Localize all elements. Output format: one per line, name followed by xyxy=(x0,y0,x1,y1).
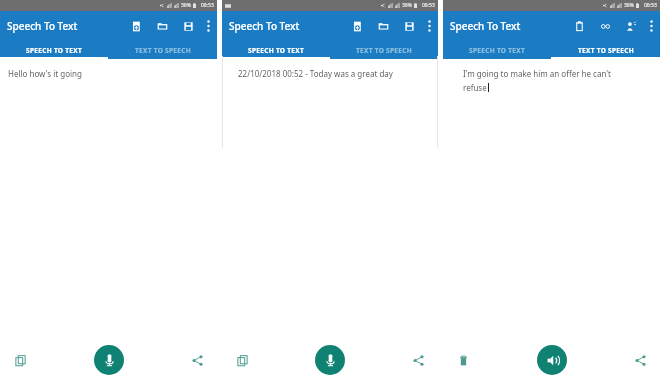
button[interactable]: SPEECH TO TEXT xyxy=(443,41,551,59)
button[interactable]: New file xyxy=(123,13,149,39)
button[interactable]: Hello how's it going xyxy=(8,68,211,79)
staticText: Speech To Text xyxy=(450,19,521,33)
button[interactable]: More options xyxy=(422,13,436,39)
staticText: TEXT TO SPEECH xyxy=(578,46,634,55)
button[interactable]: Share xyxy=(187,350,207,370)
button[interactable]: Voice settings xyxy=(618,13,644,39)
button[interactable]: Start recording xyxy=(94,345,124,375)
button[interactable]: Speak text xyxy=(537,345,567,375)
staticText: Hello how's it going xyxy=(8,68,82,79)
staticText: 22/10/2018 00:52 - Today was a great day xyxy=(238,68,393,79)
button[interactable]: Copy xyxy=(232,350,252,370)
staticText: refuse xyxy=(463,82,487,93)
button[interactable]: TEXT TO SPEECH xyxy=(551,41,660,59)
button[interactable]: SPEECH TO TEXT xyxy=(0,41,108,59)
button[interactable]: Copy xyxy=(10,350,30,370)
staticText: TEXT TO SPEECH xyxy=(135,46,191,55)
button[interactable]: Open folder xyxy=(370,13,396,39)
staticText: 00:53 xyxy=(201,2,214,9)
staticText: SPEECH TO TEXT xyxy=(248,46,304,55)
button[interactable]: More options xyxy=(201,13,215,39)
button[interactable]: TEXT TO SPEECH xyxy=(108,41,217,59)
button[interactable]: Language xyxy=(592,13,618,39)
button[interactable]: I'm going to make him an offer he can't xyxy=(463,68,654,93)
staticText: SPEECH TO TEXT xyxy=(26,46,82,55)
button[interactable]: More options xyxy=(644,13,658,39)
button[interactable]: Save xyxy=(396,13,422,39)
button[interactable]: Paste from clipboard xyxy=(566,13,592,39)
button[interactable]: New file xyxy=(344,13,370,39)
staticText: 00:53 xyxy=(422,2,435,9)
button[interactable]: Share xyxy=(408,350,428,370)
staticText: TEXT TO SPEECH xyxy=(356,46,412,55)
staticText: SPEECH TO TEXT xyxy=(469,46,525,55)
button[interactable]: Delete xyxy=(453,350,473,370)
staticText: I'm going to make him an offer he can't xyxy=(463,68,611,79)
button[interactable]: SPEECH TO TEXT xyxy=(222,41,330,59)
button[interactable]: Open folder xyxy=(149,13,175,39)
staticText: Speech To Text xyxy=(229,19,300,33)
button[interactable]: Save xyxy=(175,13,201,39)
staticText: Speech To Text xyxy=(7,19,78,33)
button[interactable]: 22/10/2018 00:52 - Today was a great day xyxy=(238,68,432,79)
button[interactable]: Start recording xyxy=(315,345,345,375)
staticText: 30% xyxy=(181,2,191,9)
staticText: 30% xyxy=(624,2,634,9)
button[interactable]: Share xyxy=(630,350,650,370)
staticText: 00:53 xyxy=(644,2,657,9)
button[interactable]: TEXT TO SPEECH xyxy=(330,41,438,59)
staticText: 30% xyxy=(402,2,412,9)
